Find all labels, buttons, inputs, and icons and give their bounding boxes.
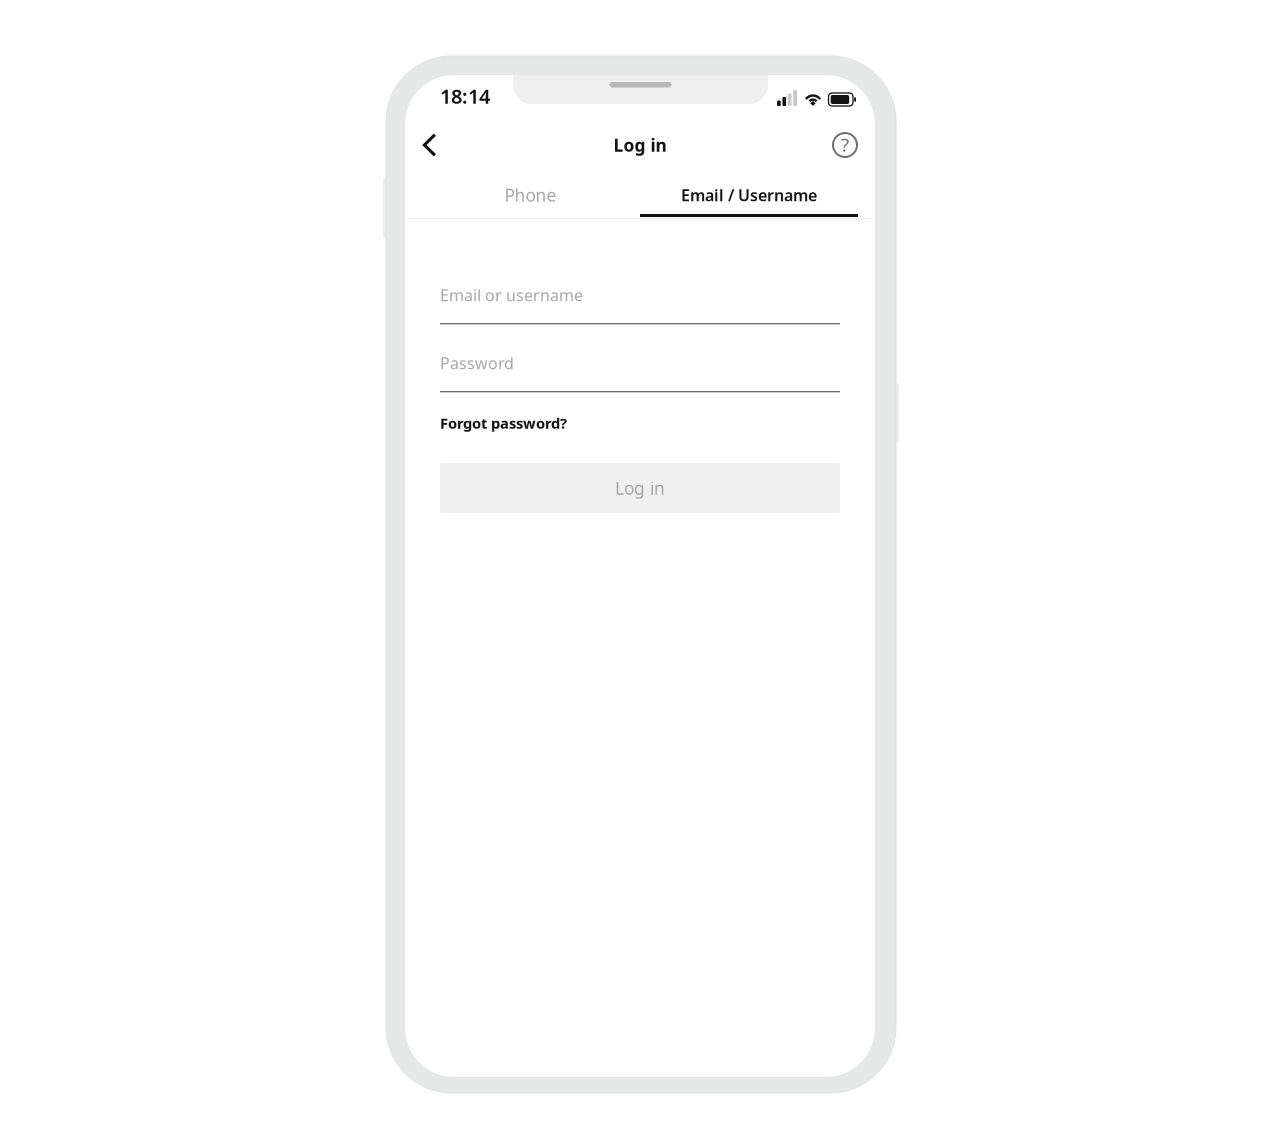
staticText: Log in [615,476,665,499]
button[interactable]: Log in [440,463,840,513]
staticText: 18:14 [440,83,490,109]
staticText: Forgot password? [440,413,567,433]
staticText: ? [841,132,849,157]
staticText: Password [440,352,514,374]
staticText: Email or username [440,284,583,306]
button[interactable]: Help [821,123,869,167]
button[interactable]: Email or username [440,284,840,325]
button[interactable]: Forgot password? [440,411,840,435]
button[interactable]: Back [406,123,454,167]
button[interactable]: Email / Username [640,173,858,219]
staticText: Email / Username [681,184,817,206]
button[interactable]: Phone [413,173,648,217]
staticText: Phone [504,183,556,206]
staticText: Log in [613,133,666,156]
button[interactable]: Password [440,352,840,393]
